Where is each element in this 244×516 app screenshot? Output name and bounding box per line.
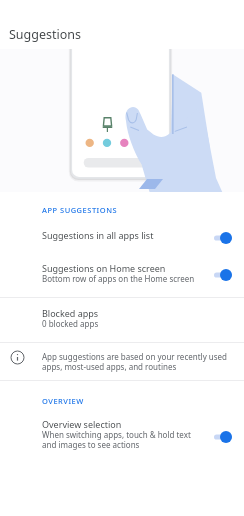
staticText: Suggestions on Home screen	[42, 262, 166, 274]
staticText: Bottom row of apps on the Home screen	[42, 273, 195, 284]
button[interactable]: Toggle	[214, 231, 238, 245]
staticText: App suggestions are based on your recent…	[42, 351, 227, 372]
staticText: Blocked apps	[42, 307, 99, 319]
staticText: OVERVIEW	[42, 396, 84, 406]
staticText: Suggestions in all apps list	[42, 229, 154, 241]
button[interactable]: Suggestions on Home screen	[0, 258, 244, 297]
button[interactable]: Toggle	[214, 430, 238, 444]
staticText: APP SUGGESTIONS	[42, 205, 118, 215]
button[interactable]: Blocked apps	[0, 298, 244, 342]
staticText: Suggestions	[9, 26, 82, 43]
staticText: 0 blocked apps	[42, 318, 99, 329]
button[interactable]: Suggestions	[0, 0, 244, 47]
staticText: When switching apps, touch & hold text a…	[42, 429, 191, 450]
staticText: Overview selection	[42, 418, 122, 430]
button[interactable]: Overview selection	[0, 410, 244, 458]
button[interactable]: Suggestions in all apps list	[0, 219, 244, 258]
button[interactable]: Toggle	[214, 268, 238, 282]
